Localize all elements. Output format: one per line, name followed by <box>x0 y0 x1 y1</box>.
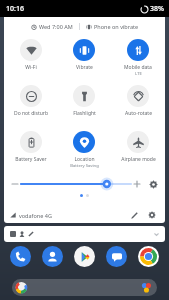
staticText: Do not disturb <box>14 110 48 117</box>
button[interactable]: Increase brightness <box>131 178 143 190</box>
button[interactable]: Flashlight <box>57 81 111 117</box>
button[interactable]: Location <box>57 127 111 169</box>
button[interactable]: Notifications <box>4 226 165 242</box>
button[interactable]: Auto-rotate <box>111 81 165 117</box>
staticText: LTE <box>135 71 142 77</box>
button[interactable]: Brightness <box>21 177 131 191</box>
button[interactable]: Battery Saver <box>4 127 57 163</box>
staticText: Battery Saving <box>70 163 99 169</box>
button[interactable]: Decrease brightness <box>9 178 21 190</box>
button[interactable]: Settings <box>145 208 159 222</box>
button[interactable]: Messages <box>106 246 127 267</box>
button[interactable]: Phone <box>10 246 31 267</box>
staticText: Wed 7:00 AM <box>39 23 73 30</box>
staticText: Flashlight <box>73 110 96 117</box>
button[interactable]: Mobile data <box>111 35 165 77</box>
button[interactable]: Chrome <box>138 246 159 267</box>
button[interactable]: Brightness settings <box>146 177 160 191</box>
staticText: 10:16 <box>6 4 24 14</box>
button[interactable]: Airplane mode <box>111 127 165 163</box>
staticText: Location <box>74 156 95 163</box>
button[interactable]: Phone on vibrate <box>84 22 141 31</box>
staticText: Battery Saver <box>15 156 47 163</box>
staticText: Airplane mode <box>121 156 156 163</box>
button[interactable]: Do not disturb <box>4 81 57 117</box>
button[interactable]: Contacts <box>42 246 63 267</box>
staticText: 38% <box>150 4 164 14</box>
staticText: Vibrate <box>76 64 93 71</box>
staticText: vodafone 4G <box>19 212 52 219</box>
button[interactable]: Edit tiles <box>127 208 141 222</box>
staticText: Wi-Fi <box>25 64 37 71</box>
button[interactable]: Wi-Fi <box>4 35 57 71</box>
staticText: Mobile data <box>124 64 152 71</box>
staticText: Phone on vibrate <box>94 23 139 30</box>
button[interactable]: Vibrate <box>57 35 111 71</box>
button[interactable]: Wed 7:00 AM <box>29 22 75 31</box>
button[interactable]: Play Store <box>74 246 95 267</box>
button[interactable]: Google search <box>12 279 157 296</box>
staticText: Auto-rotate <box>125 110 152 117</box>
